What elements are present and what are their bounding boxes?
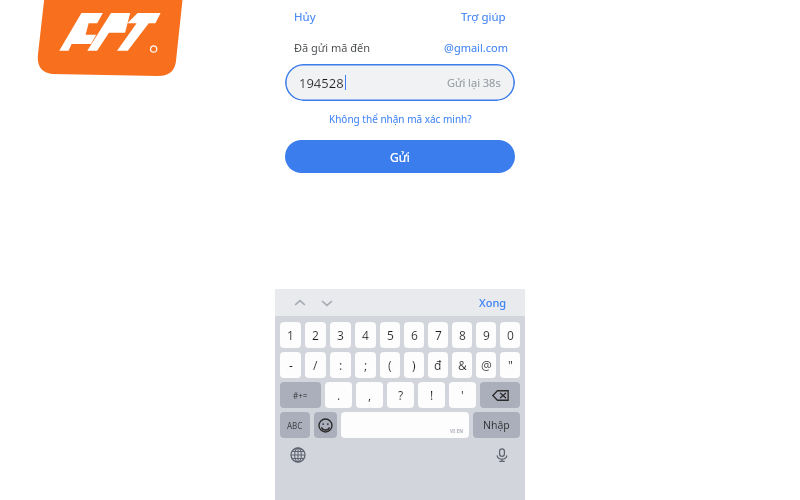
button[interactable]: !	[418, 382, 445, 408]
staticText: #+=	[293, 390, 308, 401]
button[interactable]: 3	[330, 322, 351, 348]
button[interactable]: 9	[476, 322, 496, 348]
staticText: Xong	[479, 295, 507, 310]
button[interactable]: :	[330, 352, 351, 378]
staticText: 3	[337, 327, 344, 343]
staticText: 6	[411, 327, 418, 343]
button[interactable]: Trợ giúp	[455, 5, 512, 29]
staticText: Nhập	[483, 418, 510, 432]
button[interactable]: Hủy	[288, 5, 322, 29]
button[interactable]: 2	[305, 322, 326, 348]
button[interactable]: Voice input	[489, 442, 515, 468]
staticText: ?	[398, 387, 404, 403]
button[interactable]: .	[325, 382, 352, 408]
button[interactable]: 194528	[285, 64, 515, 101]
staticText: 2	[312, 327, 319, 343]
button[interactable]: 8	[452, 322, 472, 348]
button[interactable]: 0	[500, 322, 520, 348]
staticText: :	[339, 357, 343, 373]
staticText: 5	[387, 327, 394, 343]
button[interactable]: -	[280, 352, 301, 378]
staticText: (	[388, 357, 392, 373]
staticText: VI EN	[450, 428, 464, 435]
staticText: '	[461, 387, 464, 403]
staticText: Gửi lại 38s	[447, 75, 501, 90]
button[interactable]: Previous field	[289, 292, 311, 314]
button[interactable]: Xong	[475, 292, 511, 313]
staticText: Trợ giúp	[461, 9, 506, 25]
staticText: 8	[459, 327, 466, 343]
staticText: Không thể nhận mã xác minh?	[329, 112, 472, 126]
staticText: @gmail.com	[444, 40, 508, 55]
staticText: đ	[434, 357, 442, 373]
button[interactable]: @gmail.com	[444, 40, 508, 55]
button[interactable]: ;	[355, 352, 376, 378]
staticText: 1	[287, 327, 294, 343]
staticText: @	[481, 357, 492, 373]
button[interactable]: @	[476, 352, 496, 378]
button[interactable]: Space	[341, 412, 469, 438]
button[interactable]: )	[404, 352, 424, 378]
staticText: &	[458, 357, 467, 373]
button[interactable]: Emoji	[314, 412, 337, 438]
staticText: .	[337, 387, 341, 403]
button[interactable]: Change keyboard language	[285, 442, 311, 468]
staticText: 4	[362, 327, 369, 343]
staticText: 9	[483, 327, 490, 343]
staticText: ABC	[287, 420, 303, 431]
staticText: ,	[368, 387, 372, 403]
staticText: Hủy	[294, 9, 316, 25]
staticText: 0	[507, 327, 514, 343]
button[interactable]: Backspace	[480, 382, 520, 408]
button[interactable]: 4	[355, 322, 376, 348]
staticText: )	[412, 357, 416, 373]
button[interactable]: 6	[404, 322, 424, 348]
button[interactable]: "	[500, 352, 520, 378]
button[interactable]: ABC	[280, 412, 310, 438]
staticText: 7	[435, 327, 442, 343]
staticText: Gửi	[390, 149, 410, 165]
staticText: Đã gửi mã đến	[294, 40, 371, 55]
staticText: ;	[364, 357, 368, 373]
button[interactable]: Gửi	[285, 140, 515, 173]
button[interactable]: Next field	[316, 292, 338, 314]
staticText: !	[430, 387, 434, 403]
staticText: "	[508, 357, 513, 373]
button[interactable]: ?	[387, 382, 414, 408]
staticText: -	[289, 357, 293, 373]
staticText: 194528	[299, 74, 344, 92]
staticText: /	[313, 357, 318, 373]
button[interactable]: Nhập	[473, 412, 520, 438]
button[interactable]: 5	[380, 322, 400, 348]
button[interactable]: &	[452, 352, 472, 378]
button[interactable]: đ	[428, 352, 448, 378]
button[interactable]: #+=	[280, 382, 321, 408]
button[interactable]: Không thể nhận mã xác minh?	[325, 110, 476, 128]
button[interactable]: 1	[280, 322, 301, 348]
button[interactable]: (	[380, 352, 400, 378]
button[interactable]: /	[305, 352, 326, 378]
button[interactable]: '	[449, 382, 476, 408]
button[interactable]: ,	[356, 382, 383, 408]
button[interactable]: 7	[428, 322, 448, 348]
other: FPT logo	[36, 0, 184, 76]
